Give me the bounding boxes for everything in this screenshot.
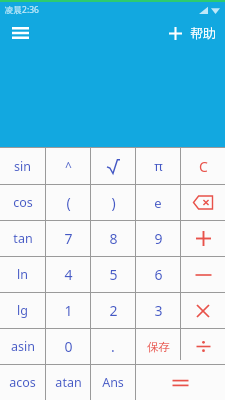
button[interactable]: e <box>136 185 180 220</box>
staticText: 3 <box>154 301 163 320</box>
staticText: 0 <box>64 337 73 356</box>
button[interactable]: RAD <box>91 148 135 184</box>
button[interactable]: 6 <box>136 257 180 292</box>
staticText: 凌晨2:36 <box>5 4 39 16</box>
staticText: cos <box>13 194 33 211</box>
button[interactable]: 7 <box>46 221 90 256</box>
button[interactable]: . <box>91 329 135 364</box>
staticText: asin <box>11 338 35 355</box>
staticText: lg <box>17 302 28 319</box>
staticText: ^ <box>65 158 72 174</box>
staticText: ln <box>17 266 28 283</box>
button[interactable]: atan <box>46 365 90 400</box>
staticText: Ans <box>102 374 124 391</box>
staticText: 帮助 <box>190 25 216 41</box>
staticText: ( <box>66 193 71 212</box>
button[interactable]: MINUS <box>181 257 225 292</box>
button[interactable]: 5 <box>91 257 135 292</box>
button[interactable]: C <box>181 148 225 184</box>
staticText: . <box>111 337 115 356</box>
staticText: π <box>154 157 163 175</box>
button[interactable]: 帮助 <box>188 18 225 48</box>
button[interactable]: 保存 <box>136 329 180 364</box>
button[interactable]: 3 <box>136 293 180 328</box>
button[interactable]: 1 <box>46 293 90 328</box>
button[interactable]: sin <box>0 148 45 184</box>
staticText: 保存 <box>147 340 170 354</box>
button[interactable]: π <box>136 148 180 184</box>
button[interactable]: DIV <box>181 329 225 364</box>
button[interactable]: 4 <box>46 257 90 292</box>
button[interactable]: ) <box>91 185 135 220</box>
staticText: 6 <box>154 265 163 284</box>
button[interactable]: BACK <box>181 185 225 220</box>
staticText: sin <box>14 158 31 175</box>
button[interactable]: acos <box>0 365 45 400</box>
staticText: 1 <box>64 301 73 320</box>
staticText: e <box>154 194 162 212</box>
button[interactable]: ( <box>46 185 90 220</box>
staticText: C <box>199 157 208 176</box>
button[interactable]: EQ <box>136 365 225 400</box>
button[interactable]: 2 <box>91 293 135 328</box>
button[interactable]: tan <box>0 221 45 256</box>
staticText: ) <box>111 193 116 212</box>
staticText: tan <box>13 230 33 247</box>
button[interactable]: Add <box>162 18 188 48</box>
staticText: acos <box>9 374 36 391</box>
staticText: 5 <box>109 265 118 284</box>
staticText: 9 <box>154 229 163 248</box>
staticText: 4 <box>64 265 73 284</box>
staticText: 8 <box>109 229 118 248</box>
staticText: 2 <box>109 301 118 320</box>
button[interactable]: cos <box>0 185 45 220</box>
button[interactable]: asin <box>0 329 45 364</box>
button[interactable]: Menu <box>0 18 40 48</box>
button[interactable]: Ans <box>91 365 135 400</box>
button[interactable]: PLUS <box>181 221 225 256</box>
button[interactable]: ^ <box>46 148 90 184</box>
button[interactable]: 8 <box>91 221 135 256</box>
button[interactable]: ln <box>0 257 45 292</box>
staticText: atan <box>55 374 82 391</box>
button[interactable]: TIMES <box>181 293 225 328</box>
button[interactable]: lg <box>0 293 45 328</box>
button[interactable]: 9 <box>136 221 180 256</box>
staticText: 7 <box>64 229 73 248</box>
button[interactable]: 0 <box>46 329 90 364</box>
